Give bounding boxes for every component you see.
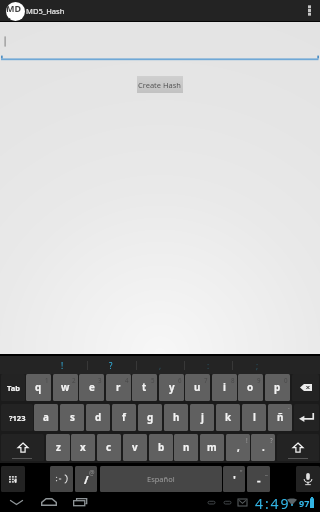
button[interactable]: - xyxy=(247,466,270,492)
staticText: j xyxy=(201,411,204,424)
staticText: 8 xyxy=(231,376,235,384)
button[interactable]: ! xyxy=(38,356,86,374)
button[interactable]: d xyxy=(86,404,110,431)
staticText: u xyxy=(194,381,201,394)
staticText: " xyxy=(240,468,243,476)
button[interactable] xyxy=(296,466,320,492)
staticText: ?123 xyxy=(9,413,26,423)
staticText: q xyxy=(35,381,42,394)
button[interactable] xyxy=(1,434,44,461)
staticText: d xyxy=(95,411,102,424)
staticText: l xyxy=(253,411,256,424)
button[interactable]: c xyxy=(97,434,121,461)
staticText: n xyxy=(183,441,190,454)
staticText: r xyxy=(116,381,121,394)
button[interactable] xyxy=(294,404,319,431)
staticText: w xyxy=(61,381,70,394)
button[interactable] xyxy=(0,22,320,60)
button[interactable]: g xyxy=(138,404,162,431)
button[interactable]: j xyxy=(190,404,214,431)
staticText: 5 xyxy=(151,376,155,384)
button[interactable]: r xyxy=(106,374,131,401)
button[interactable]: x xyxy=(71,434,95,461)
staticText: s xyxy=(70,411,75,424)
staticText: 0 xyxy=(284,376,288,384)
staticText: Create Hash xyxy=(138,80,182,90)
button[interactable]: Back xyxy=(0,492,33,512)
staticText: k xyxy=(225,411,232,424)
button[interactable]: a xyxy=(34,404,58,431)
button[interactable]: v xyxy=(123,434,147,461)
staticText: , xyxy=(237,441,240,454)
button[interactable]: Español xyxy=(100,466,222,492)
button[interactable]: More options xyxy=(298,0,320,21)
staticText: / xyxy=(84,472,89,487)
staticText: ' xyxy=(233,472,236,487)
button[interactable]: z xyxy=(46,434,70,461)
staticText: 6 xyxy=(178,376,182,384)
button[interactable] xyxy=(50,466,73,492)
button[interactable]: b xyxy=(149,434,173,461)
staticText: 4 xyxy=(125,376,129,384)
button[interactable]: / xyxy=(75,466,97,492)
staticText: ! xyxy=(246,436,248,444)
staticText: Tab xyxy=(7,383,20,393)
button[interactable]: t xyxy=(132,374,157,401)
button[interactable]: u xyxy=(185,374,210,401)
button[interactable]: Recents xyxy=(64,492,97,512)
button[interactable]: k xyxy=(216,404,240,431)
staticText: ? xyxy=(109,360,113,371)
staticText: g xyxy=(147,411,154,424)
button[interactable]: p xyxy=(265,374,290,401)
button[interactable]: ' xyxy=(223,466,245,492)
staticText: 2 xyxy=(72,376,76,384)
staticText: f xyxy=(122,411,126,424)
staticText: p xyxy=(274,381,281,394)
staticText: a xyxy=(43,411,49,424)
staticText: - xyxy=(257,472,261,487)
staticText: h xyxy=(173,411,180,424)
staticText: : xyxy=(207,360,210,371)
staticText: ñ xyxy=(277,411,284,424)
staticText: MD5 xyxy=(6,2,25,21)
button[interactable]: Tab xyxy=(1,374,25,401)
button[interactable]: o xyxy=(238,374,263,401)
staticText: Español xyxy=(147,474,175,484)
staticText: 97 xyxy=(299,497,310,509)
button[interactable]: , xyxy=(226,434,250,461)
staticText: x xyxy=(80,441,86,454)
button[interactable]: s xyxy=(60,404,84,431)
button[interactable]: Home xyxy=(33,492,64,512)
staticText: @ xyxy=(89,468,95,476)
button[interactable]: Create Hash xyxy=(137,76,183,93)
staticText: 3 xyxy=(98,376,102,384)
button[interactable]: . xyxy=(251,434,275,461)
button[interactable]: l xyxy=(242,404,266,431)
staticText: 4:49 xyxy=(255,494,291,512)
button[interactable]: h xyxy=(164,404,188,431)
button[interactable]: f xyxy=(112,404,136,431)
button[interactable]: i xyxy=(212,374,237,401)
button[interactable]: q xyxy=(26,374,51,401)
button[interactable]: w xyxy=(53,374,78,401)
button[interactable]: m xyxy=(200,434,224,461)
button[interactable] xyxy=(292,374,319,401)
button[interactable]: n xyxy=(174,434,198,461)
staticText: ´ xyxy=(288,406,290,414)
button[interactable]: e xyxy=(79,374,104,401)
button[interactable] xyxy=(1,466,25,492)
button[interactable]: ñ xyxy=(268,404,292,431)
staticText: 1 xyxy=(45,376,49,384)
staticText: z xyxy=(56,441,61,454)
staticText: ; xyxy=(256,360,259,371)
button[interactable] xyxy=(277,434,319,461)
staticText: t xyxy=(142,381,147,394)
button[interactable]: y xyxy=(159,374,184,401)
staticText: i xyxy=(223,381,226,394)
button[interactable]: ? xyxy=(87,356,135,374)
staticText: 7 xyxy=(204,376,208,384)
button[interactable]: ?123 xyxy=(1,404,33,431)
